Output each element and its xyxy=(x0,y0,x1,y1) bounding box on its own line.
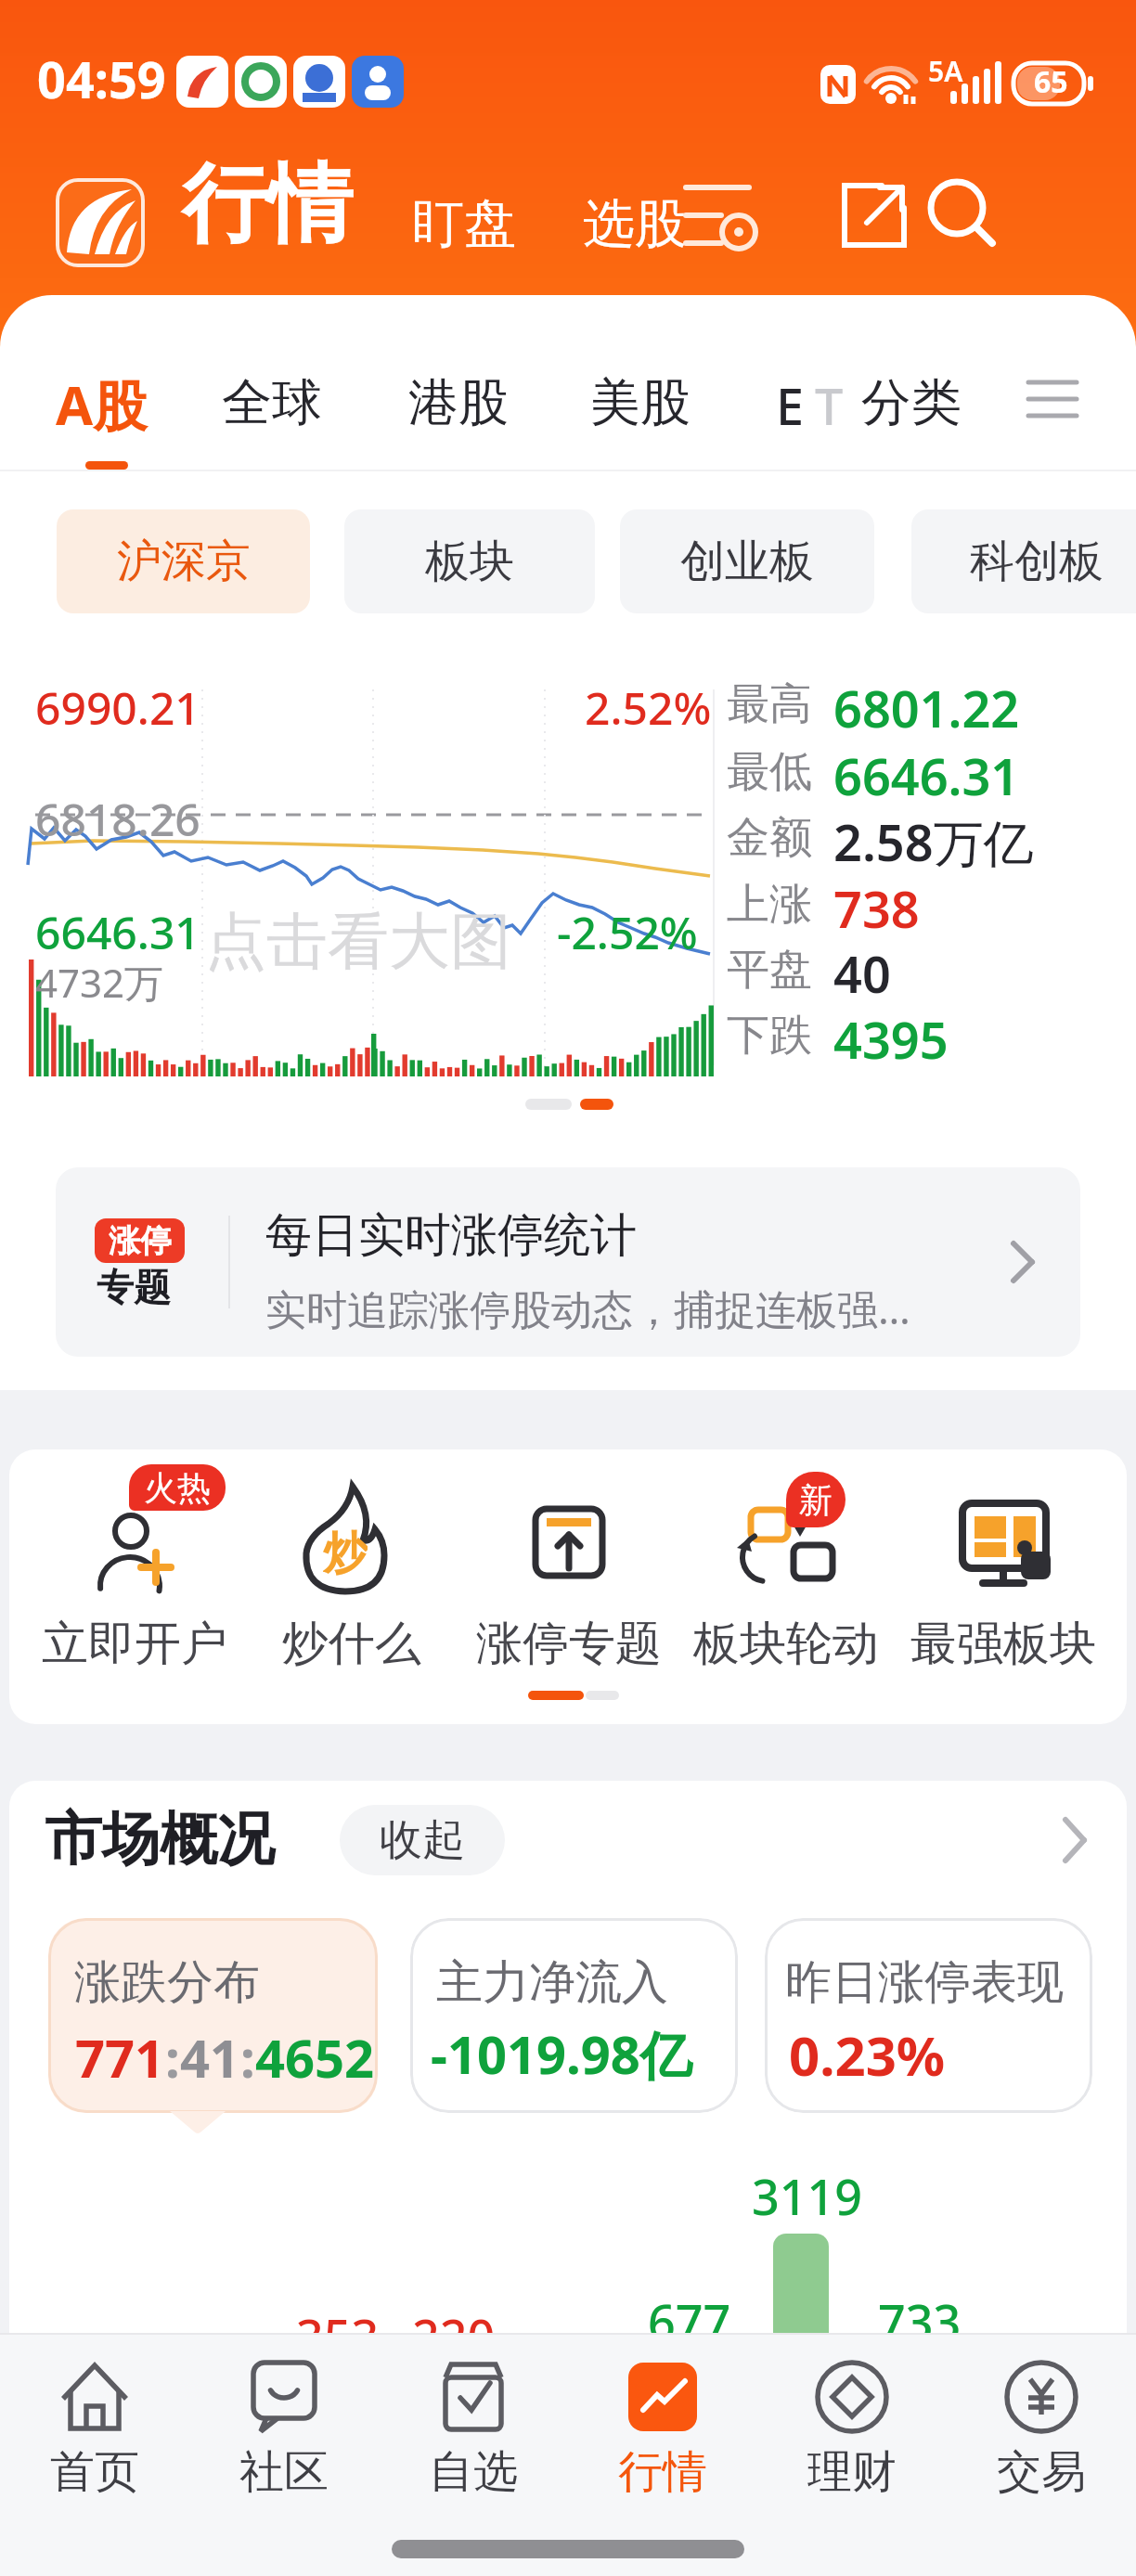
staticText: 最高 xyxy=(727,677,812,731)
button[interactable]: 昨日涨停表现 xyxy=(765,1918,1092,2113)
staticText: 6646.31 xyxy=(35,902,200,962)
button[interactable] xyxy=(1019,375,1084,431)
staticText: 738 xyxy=(833,874,920,943)
staticText: -1019.98亿 xyxy=(431,2018,692,2089)
staticText: 平盘 xyxy=(727,943,812,997)
button[interactable]: A股 xyxy=(56,367,148,441)
staticText: 353 xyxy=(296,2303,380,2369)
staticText: : xyxy=(240,2022,255,2093)
staticText: 涨停专题 xyxy=(476,1615,662,1673)
staticText: 涨停 xyxy=(109,1221,172,1261)
staticText: 65 xyxy=(1034,61,1068,102)
staticText: 733 xyxy=(878,2288,962,2354)
button[interactable]: 科创板 xyxy=(911,509,1136,613)
staticText: 沪深京 xyxy=(117,534,251,589)
staticText: 771 xyxy=(75,2022,165,2093)
staticText: 炒 xyxy=(323,1526,368,1578)
staticText: 40 xyxy=(833,939,891,1008)
staticText: 最低 xyxy=(727,745,812,799)
button[interactable]: 沪深京 xyxy=(57,509,310,613)
staticText: 港股 xyxy=(408,371,509,434)
staticText: 市场概况 xyxy=(45,1803,275,1875)
button[interactable]: 港股 xyxy=(408,371,509,434)
button[interactable]: 6990.21 xyxy=(0,295,1136,1130)
staticText: 41 xyxy=(180,2022,240,2093)
staticText: 每日实时涨停统计 xyxy=(265,1206,637,1265)
button[interactable]: 主力净流入 xyxy=(410,1918,738,2113)
staticText: E xyxy=(776,371,805,440)
staticText: 主力净流入 xyxy=(436,1953,668,2012)
staticText: 盯盘 xyxy=(412,191,516,257)
staticText: 炒什么 xyxy=(282,1615,421,1673)
button[interactable]: 板块 xyxy=(344,509,595,613)
staticText: 下跌 xyxy=(727,1009,812,1063)
button[interactable]: 涨停 xyxy=(56,1167,1080,1357)
button[interactable]: 社区 xyxy=(189,2333,379,2537)
staticText: 选股 xyxy=(583,191,687,257)
staticText: 5A xyxy=(928,52,963,90)
staticText: 6818.26 xyxy=(35,789,200,849)
staticText: 677 xyxy=(648,2288,731,2354)
staticText: A股 xyxy=(56,367,148,441)
staticText: 创业板 xyxy=(680,534,814,589)
staticText: 6990.21 xyxy=(35,677,200,738)
button[interactable]: 行情 xyxy=(568,2333,757,2537)
staticText: 专题 xyxy=(97,1264,171,1310)
button[interactable]: 收起 xyxy=(340,1805,505,1875)
staticText: 金额 xyxy=(727,811,812,865)
button[interactable]: 炒什么 xyxy=(250,1468,454,1691)
button[interactable]: 美股 xyxy=(590,371,691,434)
button[interactable] xyxy=(839,180,913,254)
button[interactable]: 理财 xyxy=(757,2333,947,2537)
button[interactable] xyxy=(678,176,761,260)
staticText: 2.58万亿 xyxy=(833,807,1034,876)
staticText: 6646.31 xyxy=(833,741,1020,810)
staticText: 0.23% xyxy=(789,2018,946,2092)
staticText: T xyxy=(815,371,844,440)
button[interactable]: 全球 xyxy=(222,371,322,434)
button[interactable] xyxy=(923,176,1001,254)
staticText: 首页 xyxy=(50,2444,139,2500)
staticText: 火热 xyxy=(144,1467,211,1509)
staticText: 涨跌分布 xyxy=(74,1953,260,2012)
button[interactable]: 创业板 xyxy=(620,509,874,613)
staticText: 点击看大图 xyxy=(205,903,511,980)
button[interactable]: 自选 xyxy=(379,2333,568,2537)
button[interactable]: 首页 xyxy=(0,2333,189,2537)
staticText: 收起 xyxy=(380,1813,465,1867)
button[interactable]: 板块轮动 xyxy=(684,1468,888,1691)
staticText: 行情 xyxy=(182,150,353,258)
staticText: 板块 xyxy=(425,534,514,589)
staticText: 2.52% xyxy=(585,677,712,738)
button[interactable]: 涨停专题 xyxy=(467,1468,671,1691)
staticText: : xyxy=(165,2022,180,2093)
button[interactable]: 交易 xyxy=(947,2333,1136,2537)
staticText: 社区 xyxy=(239,2444,329,2500)
staticText: 理财 xyxy=(807,2444,897,2500)
staticText: 新 xyxy=(799,1479,833,1521)
button[interactable]: E xyxy=(776,371,876,440)
button[interactable]: 盯盘 xyxy=(412,191,516,257)
staticText: 4395 xyxy=(833,1005,949,1074)
staticText: 上涨 xyxy=(727,878,812,932)
staticText: 220 xyxy=(412,2303,496,2369)
button[interactable]: 最强板块 xyxy=(901,1468,1105,1691)
staticText: 4732万 xyxy=(35,956,164,1009)
staticText: 全球 xyxy=(222,371,322,434)
button[interactable]: 涨跌分布 xyxy=(48,1918,378,2113)
staticText: 立即开户 xyxy=(42,1615,227,1673)
staticText: 6801.22 xyxy=(833,674,1020,742)
staticText: 自选 xyxy=(429,2444,518,2500)
staticText: 实时追踪涨停股动态，捕捉连板强… xyxy=(265,1281,910,1336)
staticText: 4652 xyxy=(255,2022,375,2093)
staticText: 04:59 xyxy=(37,45,166,113)
staticText: 分类 xyxy=(861,371,962,434)
staticText: -2.52% xyxy=(557,902,698,962)
button[interactable]: 立即开户 xyxy=(32,1468,237,1691)
staticText: 美股 xyxy=(590,371,691,434)
button[interactable]: 选股 xyxy=(583,191,687,257)
staticText: 行情 xyxy=(618,2444,707,2500)
staticText: 板块轮动 xyxy=(693,1615,879,1673)
staticText: 科创板 xyxy=(970,534,1104,589)
button[interactable] xyxy=(58,180,143,265)
